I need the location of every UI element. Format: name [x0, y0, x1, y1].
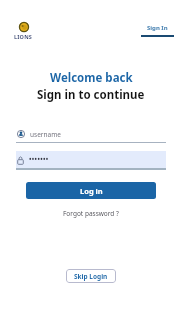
staticText: ••••••• — [29, 155, 49, 164]
button[interactable]: Forgot password ? — [63, 209, 119, 218]
button[interactable]: username — [16, 126, 166, 143]
staticText: Skip Login — [74, 272, 108, 281]
button[interactable]: Log in — [26, 182, 156, 199]
button[interactable]: ••••••• — [16, 151, 166, 170]
staticText: LIONS — [14, 33, 33, 40]
staticText: Welcome back — [50, 70, 133, 86]
staticText: username — [30, 130, 61, 139]
staticText: Sign in to continue — [37, 87, 145, 103]
staticText: Log in — [80, 186, 103, 196]
staticText: Sign In — [147, 24, 168, 32]
button[interactable]: Lions logo — [14, 22, 33, 40]
button[interactable]: Sign In — [141, 24, 174, 37]
button[interactable]: Skip Login — [66, 269, 116, 283]
